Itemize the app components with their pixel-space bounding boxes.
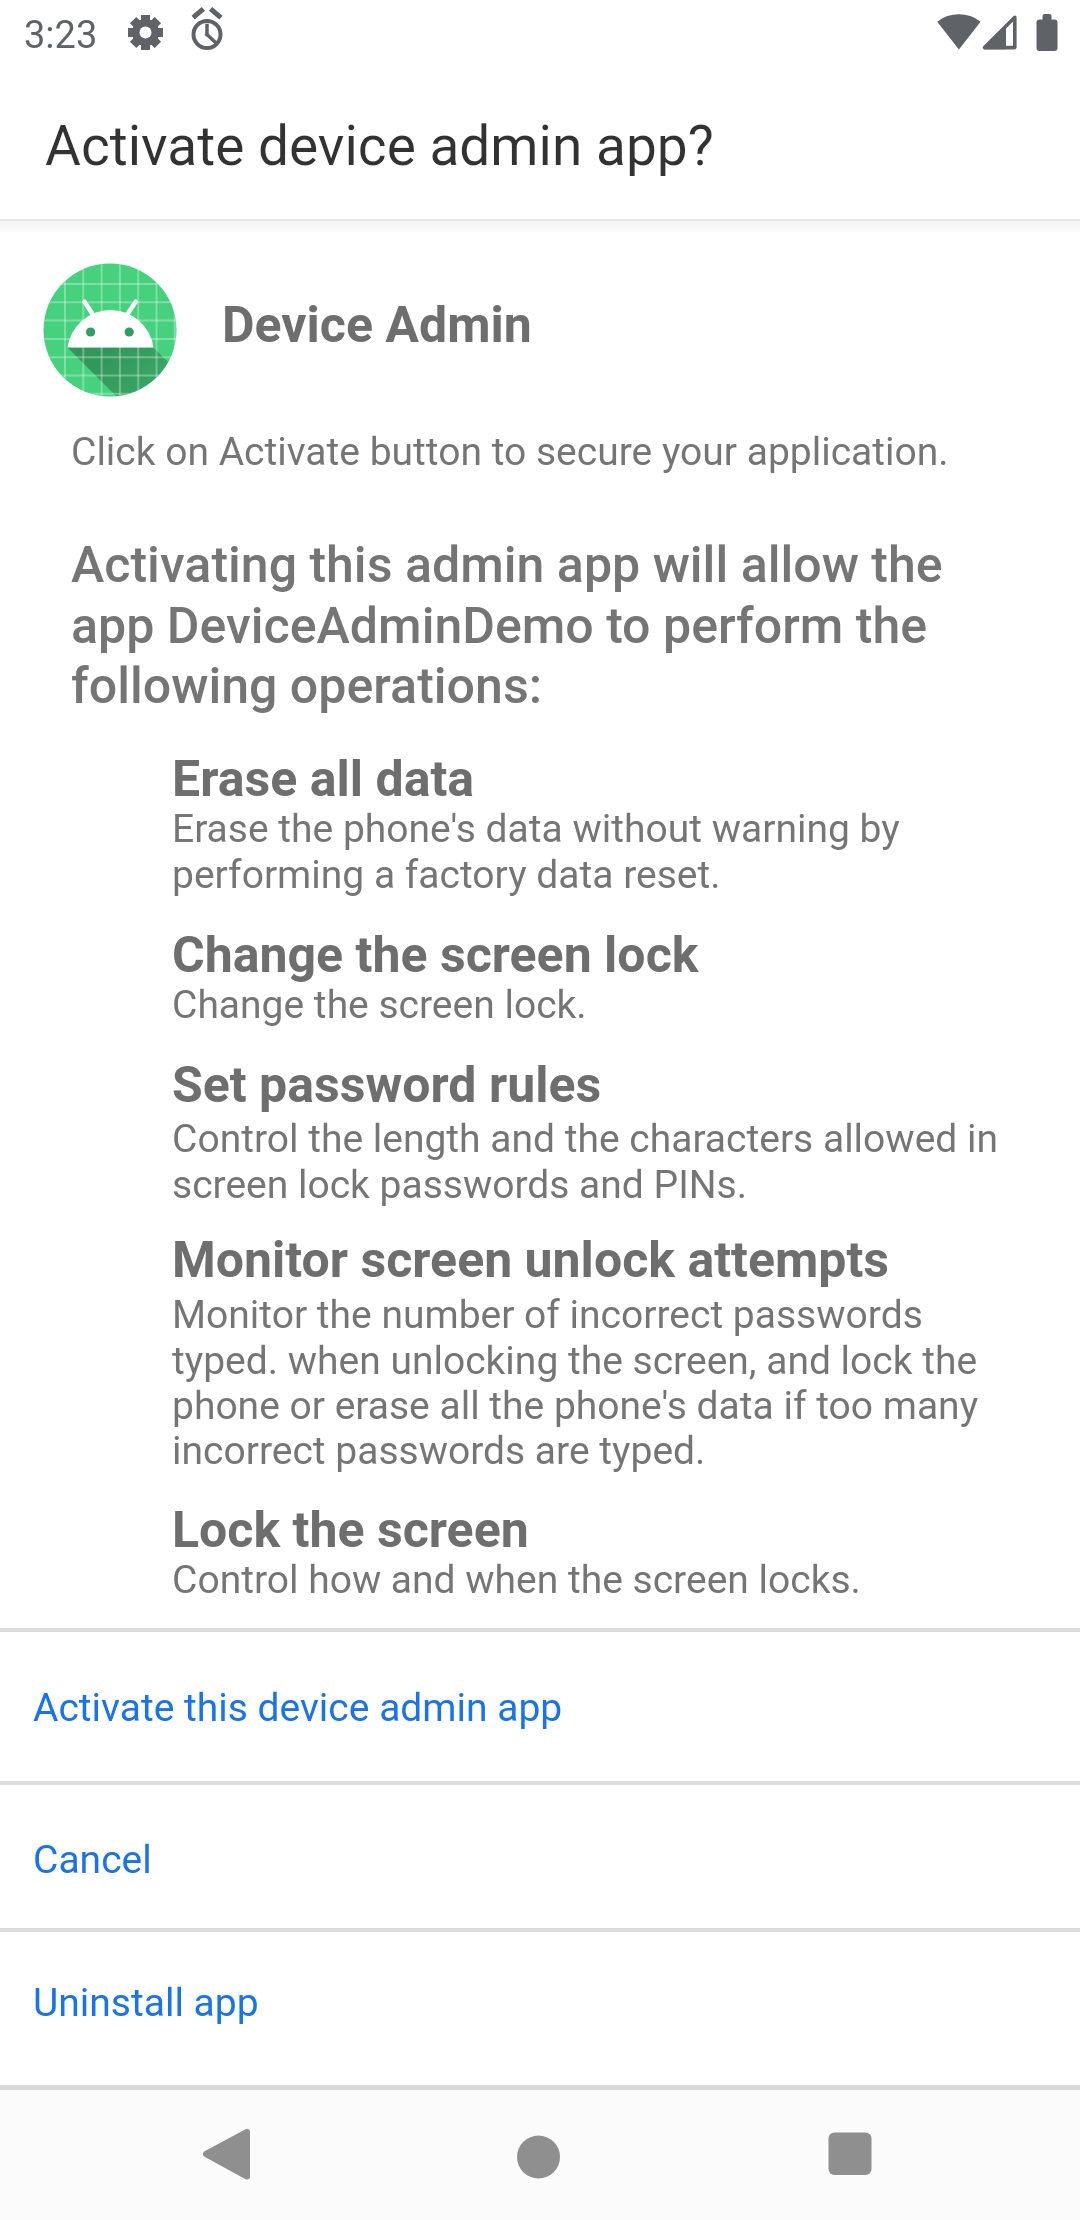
staticText: 3:23: [24, 13, 98, 58]
staticText: Change the screen lock.: [172, 982, 587, 1028]
staticText: Monitor screen unlock attempts: [172, 1231, 890, 1290]
staticText: Click on Activate button to secure your …: [71, 429, 949, 475]
staticText: Activate device admin app?: [45, 114, 714, 178]
staticText: Activating this admin app will allow the…: [71, 536, 943, 715]
staticText: Change the screen lock: [172, 926, 699, 985]
button[interactable]: Activate this device admin app: [0, 1632, 1080, 1781]
button[interactable]: Uninstall app: [0, 1932, 1080, 2085]
staticText: Erase all data: [172, 750, 475, 809]
staticText: Control how and when the screen locks.: [172, 1557, 861, 1603]
staticText: Cancel: [33, 1837, 152, 1883]
staticText: Control the length and the characters al…: [172, 1116, 999, 1207]
staticText: Set password rules: [172, 1056, 602, 1115]
staticText: Lock the screen: [172, 1501, 529, 1560]
button[interactable]: [790, 2094, 910, 2214]
staticText: Erase the phone's data without warning b…: [172, 806, 900, 897]
staticText: Activate this device admin app: [33, 1685, 563, 1731]
button[interactable]: Cancel: [0, 1785, 1080, 1928]
staticText: Device Admin: [222, 296, 532, 355]
staticText: Uninstall app: [33, 1980, 259, 2026]
button[interactable]: [166, 2094, 286, 2214]
button[interactable]: [480, 2094, 600, 2214]
staticText: Monitor the number of incorrect password…: [172, 1292, 979, 1473]
